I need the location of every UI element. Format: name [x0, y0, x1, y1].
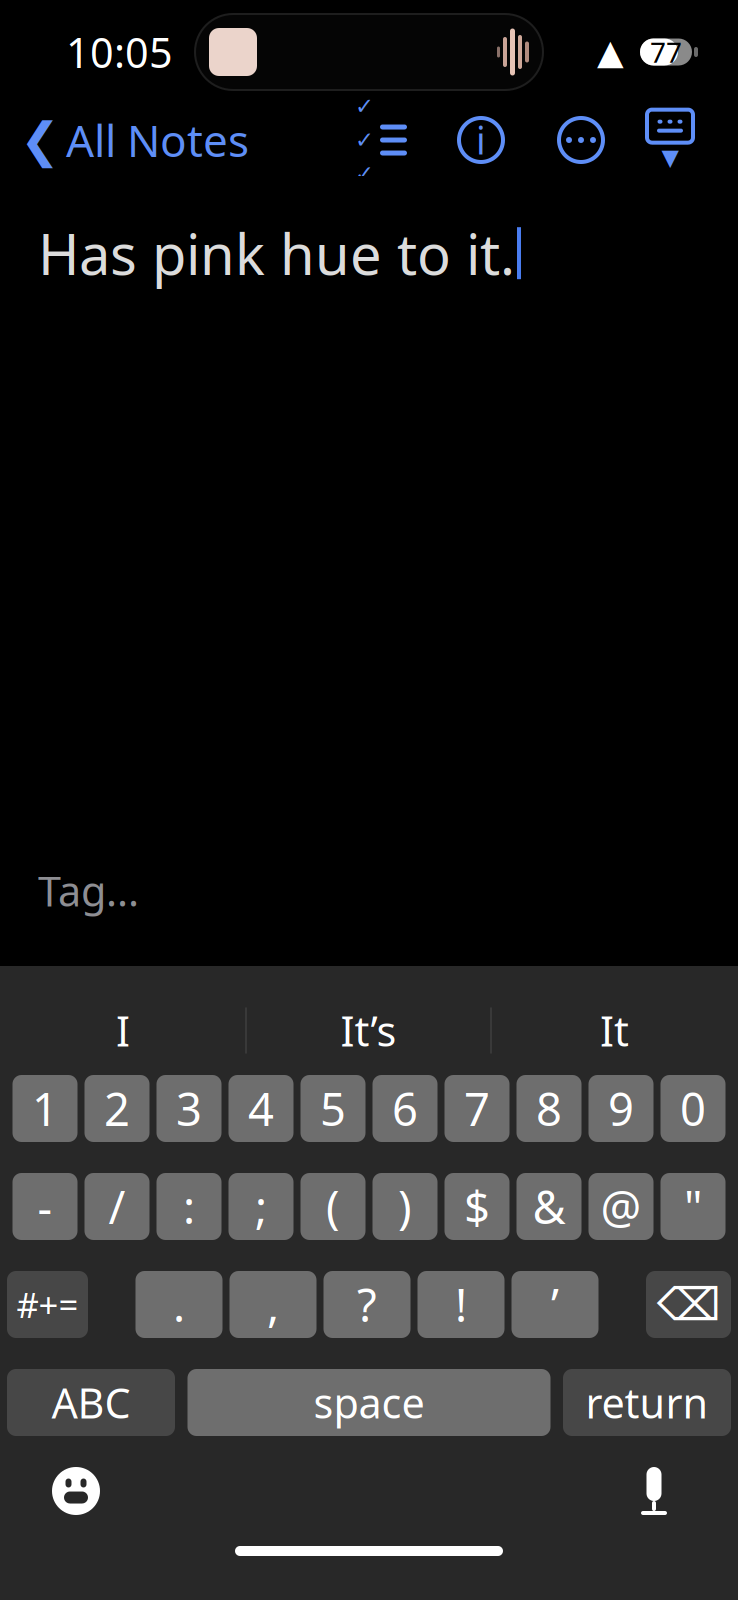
- staticText: &: [532, 1176, 565, 1237]
- staticText: ;: [255, 1176, 267, 1237]
- button[interactable]: ,: [229, 1271, 316, 1338]
- staticText: return: [585, 1375, 708, 1430]
- staticText: 4: [248, 1078, 274, 1139]
- staticText: I: [116, 1003, 130, 1058]
- staticText: ✓: [355, 161, 374, 187]
- button[interactable]: I: [0, 994, 245, 1066]
- button[interactable]: 5: [300, 1075, 365, 1142]
- button[interactable]: Format: [448, 111, 514, 169]
- staticText: 2: [104, 1078, 130, 1139]
- staticText: space: [313, 1375, 424, 1430]
- staticText: @: [600, 1176, 641, 1237]
- staticText: (: [326, 1176, 340, 1237]
- button[interactable]: (: [300, 1173, 365, 1240]
- button[interactable]: 4: [228, 1075, 293, 1142]
- button[interactable]: ;: [228, 1173, 293, 1240]
- button[interactable]: 1: [12, 1075, 77, 1142]
- staticText: ’: [551, 1274, 559, 1335]
- staticText: -: [37, 1176, 52, 1237]
- button[interactable]: return: [563, 1369, 731, 1436]
- button[interactable]: Tag...: [0, 853, 159, 928]
- staticText: $: [464, 1176, 490, 1237]
- staticText: ": [684, 1176, 702, 1237]
- button[interactable]: ): [372, 1173, 437, 1240]
- button[interactable]: Delete: [646, 1271, 731, 1338]
- staticText: 77: [650, 33, 682, 71]
- button[interactable]: It: [491, 994, 737, 1066]
- button[interactable]: Dictation: [616, 1453, 692, 1529]
- button[interactable]: !: [417, 1271, 504, 1338]
- button[interactable]: 9: [588, 1075, 653, 1142]
- button[interactable]: 6: [372, 1075, 437, 1142]
- staticText: ❮: [20, 113, 60, 167]
- staticText: 1: [32, 1078, 58, 1139]
- staticText: .: [173, 1274, 185, 1335]
- button[interactable]: ❮: [0, 99, 249, 181]
- staticText: It: [600, 1003, 629, 1058]
- button[interactable]: Checklist: [348, 111, 414, 169]
- staticText: #+=: [16, 1281, 78, 1327]
- button[interactable]: It’s: [246, 994, 490, 1066]
- staticText: 3: [176, 1078, 202, 1139]
- staticText: 9: [608, 1078, 634, 1139]
- button[interactable]: 2: [84, 1075, 149, 1142]
- staticText: ▲: [597, 32, 624, 72]
- staticText: 10:05: [66, 25, 173, 79]
- button[interactable]: &: [516, 1173, 581, 1240]
- button[interactable]: space: [187, 1369, 550, 1436]
- button[interactable]: 8: [516, 1075, 581, 1142]
- button[interactable]: More: [548, 111, 614, 169]
- button[interactable]: ’: [511, 1271, 598, 1338]
- staticText: 8: [536, 1078, 562, 1139]
- staticText: All Notes: [66, 111, 249, 169]
- staticText: !: [455, 1274, 467, 1335]
- staticText: ABC: [51, 1375, 130, 1430]
- staticText: It’s: [340, 1003, 396, 1058]
- button[interactable]: Emoji: [38, 1453, 114, 1529]
- staticText: /: [108, 1176, 125, 1237]
- staticText: Has pink hue to it.: [38, 216, 515, 290]
- staticText: 0: [680, 1078, 706, 1139]
- button[interactable]: @: [588, 1173, 653, 1240]
- staticText: ?: [357, 1274, 377, 1335]
- button[interactable]: ABC: [7, 1369, 175, 1436]
- staticText: ✓: [355, 127, 374, 153]
- button[interactable]: 0: [660, 1075, 725, 1142]
- button[interactable]: ?: [323, 1271, 410, 1338]
- button[interactable]: #+=: [7, 1271, 88, 1338]
- staticText: ▼: [661, 145, 678, 170]
- button[interactable]: /: [84, 1173, 149, 1240]
- button[interactable]: :: [156, 1173, 221, 1240]
- button[interactable]: Hide Keyboard: [640, 111, 700, 169]
- staticText: i: [476, 115, 486, 165]
- button[interactable]: $: [444, 1173, 509, 1240]
- button[interactable]: .: [135, 1271, 222, 1338]
- staticText: ✓: [355, 93, 374, 119]
- staticText: ⌫: [656, 1279, 720, 1330]
- staticText: ): [398, 1176, 412, 1237]
- staticText: Tag...: [38, 863, 139, 918]
- staticText: 5: [320, 1078, 346, 1139]
- button[interactable]: 3: [156, 1075, 221, 1142]
- staticText: :: [183, 1176, 195, 1237]
- button[interactable]: ": [660, 1173, 725, 1240]
- staticText: 7: [464, 1078, 490, 1139]
- button[interactable]: -: [12, 1173, 77, 1240]
- staticText: 6: [392, 1078, 418, 1139]
- button[interactable]: 7: [444, 1075, 509, 1142]
- staticText: ,: [267, 1274, 279, 1335]
